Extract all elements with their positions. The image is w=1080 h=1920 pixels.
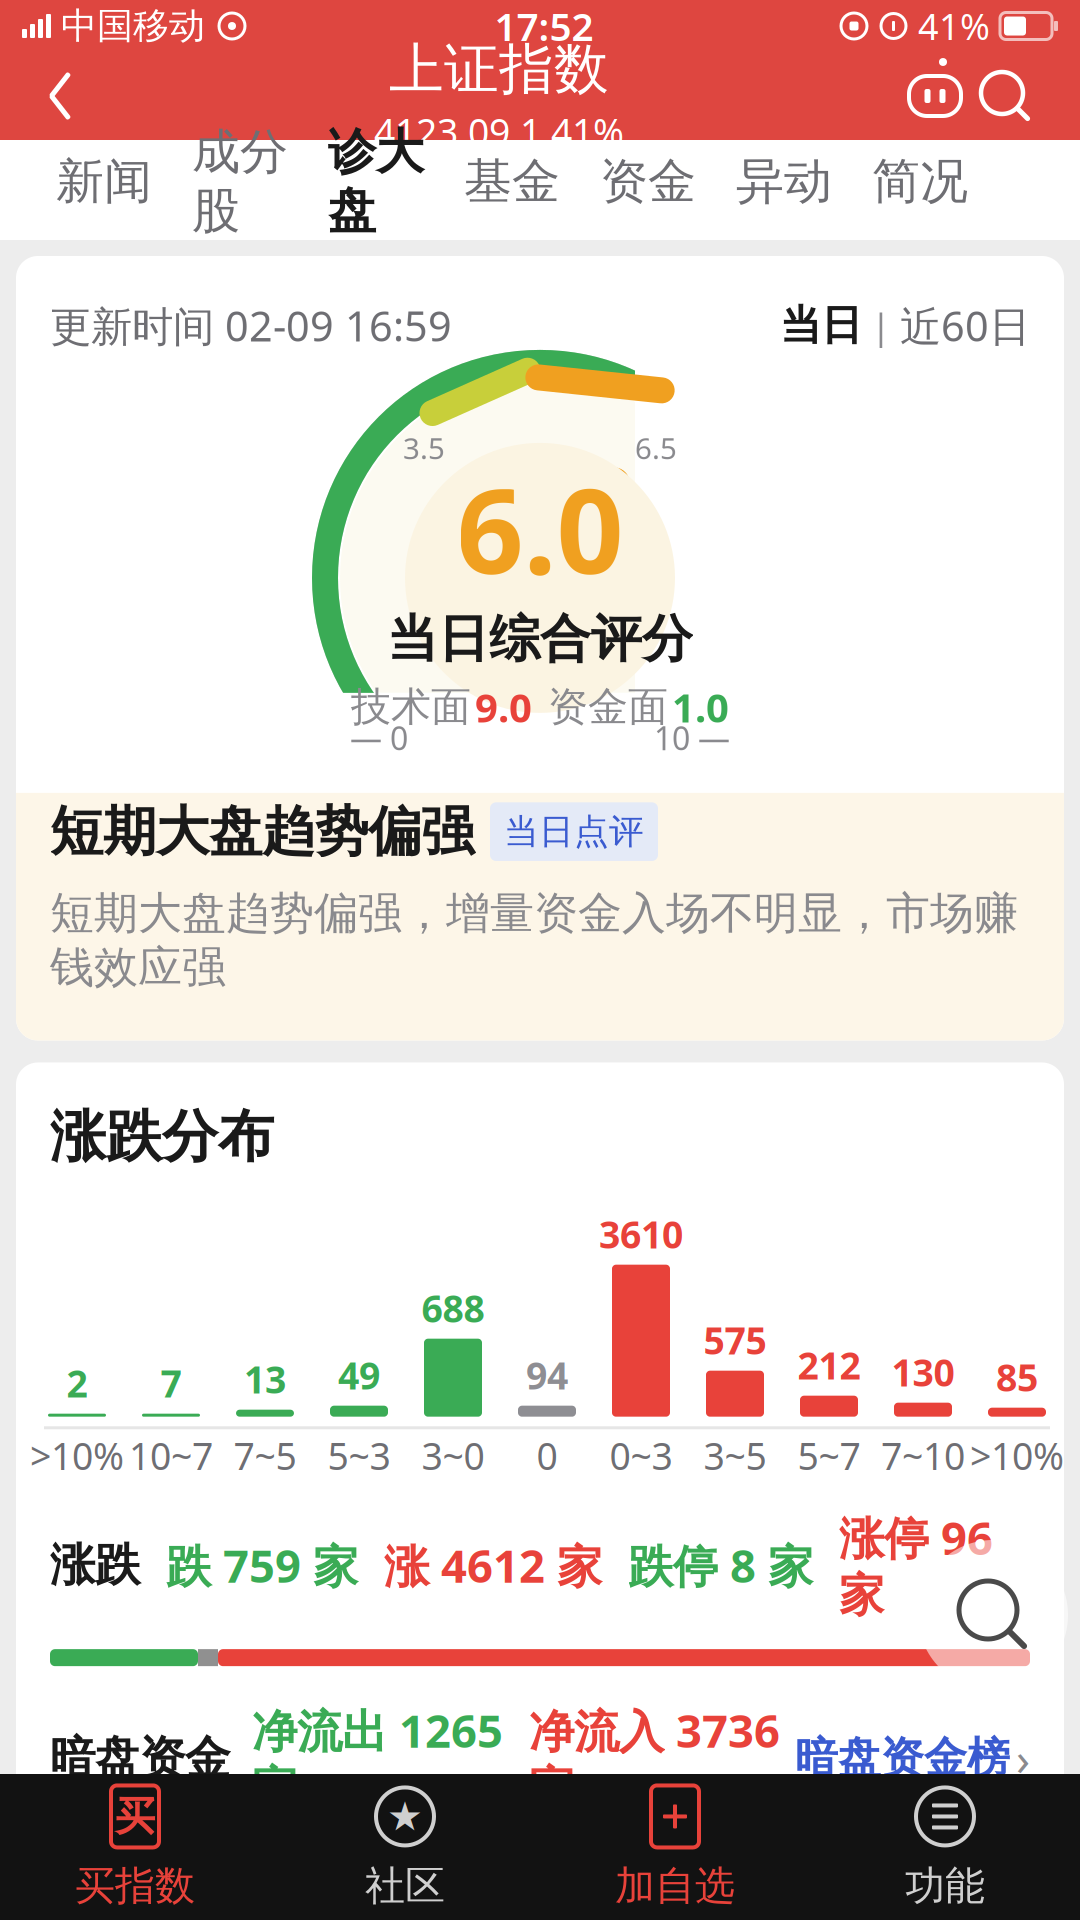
staticText: 9.0	[475, 680, 532, 733]
staticText: ★	[387, 1794, 423, 1839]
staticText: 资金面	[548, 682, 668, 731]
staticText: 近60日	[900, 298, 1030, 353]
staticText: 17:52	[494, 0, 593, 52]
staticText: 简况	[872, 152, 968, 211]
staticText: 3~5	[703, 1431, 766, 1480]
button[interactable]: 资金	[580, 142, 716, 238]
staticText: 130	[891, 1347, 954, 1397]
staticText: 6.5	[635, 428, 677, 467]
staticText: 资金	[600, 152, 696, 211]
staticText: 49	[338, 1350, 380, 1400]
staticText: 4123.09 1.41%	[374, 107, 624, 156]
staticText: 暗盘资金榜	[795, 1732, 1010, 1784]
staticText: 7	[160, 1358, 181, 1408]
button[interactable]: 成分股	[172, 142, 308, 238]
staticText: 10~7	[129, 1431, 213, 1480]
staticText: 当日	[780, 300, 862, 351]
staticText: 基金	[464, 152, 560, 211]
button[interactable]: 返回	[22, 58, 98, 134]
staticText: ›	[1016, 1728, 1030, 1788]
staticText: 94	[526, 1350, 568, 1400]
staticText: 13	[244, 1354, 286, 1404]
staticText: 技术面	[351, 682, 471, 731]
staticText: 诊大盘	[328, 122, 424, 240]
staticText: 3.5	[403, 428, 445, 467]
button[interactable]: 功能	[810, 1774, 1080, 1920]
staticText: 212	[797, 1340, 860, 1390]
button[interactable]: 暗盘资金榜	[795, 1728, 1030, 1788]
staticText: 7~5	[233, 1431, 296, 1480]
button[interactable]: 近60日	[900, 298, 1030, 353]
button[interactable]: 简况	[852, 142, 988, 238]
staticText: 净流出 1265 家	[252, 1700, 503, 1816]
staticText: 1.0	[672, 680, 729, 733]
staticText: >10%	[30, 1431, 124, 1480]
staticText: 买	[115, 1792, 155, 1841]
staticText: 涨跌	[50, 1537, 140, 1593]
staticText: 3~0	[421, 1431, 484, 1480]
staticText: 85	[996, 1352, 1038, 1402]
staticText: 上证指数	[389, 36, 609, 103]
button[interactable]: ★	[270, 1774, 540, 1920]
staticText: 2	[66, 1358, 87, 1408]
staticText: 3610	[599, 1209, 683, 1259]
staticText: 6.0	[456, 450, 623, 606]
button[interactable]: 新闻	[36, 142, 172, 238]
staticText: 7~10	[881, 1431, 965, 1480]
button[interactable]: 当日点评	[490, 802, 658, 861]
button[interactable]: 异动	[716, 142, 852, 238]
button[interactable]: 加自选	[540, 1774, 810, 1920]
staticText: 涨停 96 家	[839, 1507, 993, 1623]
staticText: 涨 4612 家	[384, 1535, 602, 1595]
staticText: 5~3	[327, 1431, 390, 1480]
staticText: 功能	[905, 1861, 985, 1910]
staticText: 当日综合评分	[387, 608, 693, 670]
staticText: 社区	[365, 1861, 445, 1910]
staticText: 跌停 8 家	[628, 1535, 813, 1595]
staticText: 短期大盘趋势偏强	[50, 799, 474, 864]
button[interactable]: 诊大盘	[308, 142, 444, 238]
staticText: 当日点评	[504, 810, 644, 853]
staticText: 短期大盘趋势偏强，增量资金入场不明显，市场赚钱效应强	[50, 886, 1018, 994]
button[interactable]: 基金	[444, 142, 580, 238]
staticText: 0~3	[609, 1431, 672, 1480]
staticText: 5~7	[797, 1431, 860, 1480]
button[interactable]: 搜索	[970, 61, 1040, 131]
staticText: 跌 759 家	[166, 1535, 358, 1595]
staticText: 买指数	[75, 1861, 195, 1910]
button[interactable]: 智能助手	[900, 61, 970, 131]
staticText: 688	[421, 1283, 484, 1333]
button[interactable]: 搜索	[918, 1540, 1068, 1690]
staticText: 加自选	[615, 1861, 735, 1910]
staticText: 更新时间 02-09 16:59	[50, 298, 452, 353]
staticText: 0	[536, 1431, 557, 1480]
staticText: 异动	[736, 152, 832, 211]
button[interactable]: 买	[0, 1774, 270, 1920]
staticText: 净流入 3736 家	[529, 1700, 780, 1816]
staticText: — 0	[350, 717, 408, 759]
button[interactable]: 当日	[780, 300, 862, 351]
staticText: 涨跌分布	[50, 1102, 274, 1171]
staticText: 41%	[918, 2, 990, 50]
staticText: |	[862, 301, 900, 349]
staticText: 新闻	[56, 152, 152, 211]
staticText: 成分股	[192, 122, 288, 240]
staticText: 10 —	[654, 717, 730, 759]
staticText: 中国移动	[61, 4, 205, 48]
staticText: >10%	[970, 1431, 1064, 1480]
staticText: 575	[703, 1315, 766, 1365]
staticText: 暗盘资金	[50, 1730, 230, 1786]
